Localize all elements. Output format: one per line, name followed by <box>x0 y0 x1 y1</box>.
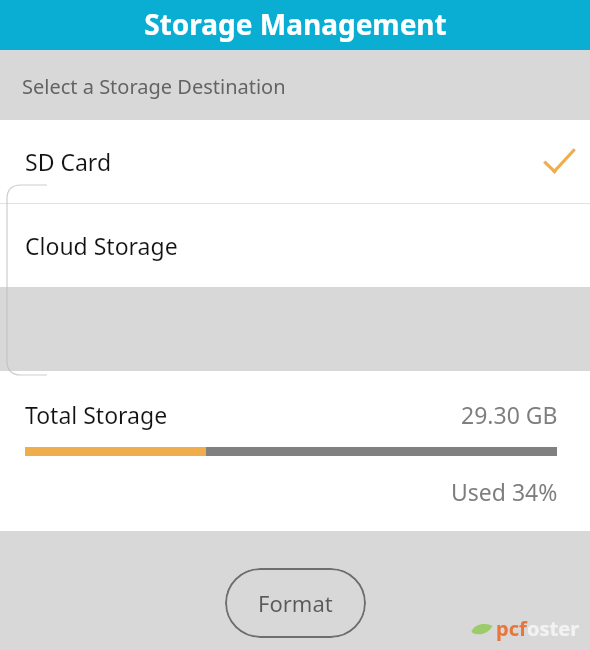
button[interactable]: SD Card <box>0 120 590 203</box>
staticText: pcf <box>496 615 527 642</box>
staticText: Select a Storage Destination <box>22 73 286 100</box>
button[interactable]: Cloud Storage <box>0 204 590 287</box>
staticText: Cloud Storage <box>25 230 178 261</box>
staticText: 29.30 GB <box>461 399 558 430</box>
button[interactable]: Format <box>225 568 366 638</box>
staticText: Total Storage <box>25 399 168 430</box>
other: Selected <box>542 145 576 179</box>
staticText: Storage Management <box>144 5 447 43</box>
staticText: oster <box>527 615 580 642</box>
staticText: Used 34% <box>451 476 558 507</box>
staticText: SD Card <box>25 146 112 177</box>
staticText: Format <box>258 588 333 618</box>
